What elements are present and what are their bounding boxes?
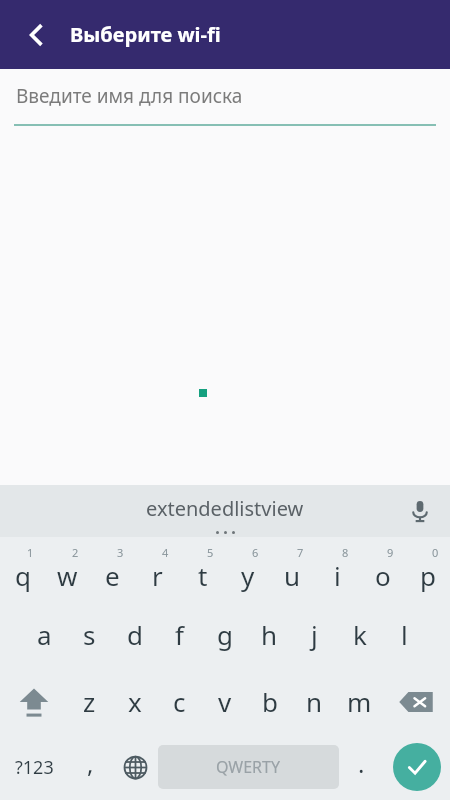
button[interactable]: Change language	[112, 735, 158, 799]
staticText: .	[358, 747, 365, 780]
button[interactable]: extendedlistview	[146, 495, 304, 522]
staticText: Выберите wi-fi	[70, 21, 221, 48]
staticText: s	[83, 617, 96, 652]
staticText: x	[128, 684, 142, 719]
staticText: h	[261, 617, 278, 652]
staticText: j	[311, 617, 318, 652]
staticText: z	[83, 684, 96, 719]
button[interactable]: 5	[180, 539, 225, 601]
staticText: o	[375, 558, 391, 593]
staticText: d	[127, 617, 143, 652]
staticText: w	[57, 558, 78, 593]
staticText: 4	[162, 545, 169, 560]
staticText: g	[217, 617, 233, 652]
staticText: 2	[72, 545, 79, 560]
button[interactable]: 1	[0, 539, 45, 601]
button[interactable]: b	[247, 668, 292, 735]
staticText: t	[198, 558, 208, 593]
button[interactable]: x	[112, 668, 157, 735]
button[interactable]: z	[67, 668, 112, 735]
button[interactable]: 7	[270, 539, 315, 601]
button[interactable]: f	[157, 601, 202, 668]
staticText: q	[15, 558, 31, 593]
staticText: n	[306, 684, 323, 719]
button[interactable]: h	[247, 601, 292, 668]
staticText: ,	[87, 747, 94, 780]
staticText: 7	[297, 545, 304, 560]
button[interactable]: Voice input	[398, 489, 442, 533]
staticText: f	[175, 617, 184, 652]
staticText: y	[241, 558, 255, 593]
staticText: ?123	[15, 755, 54, 780]
button[interactable]: 8	[315, 539, 360, 601]
button[interactable]: .	[339, 735, 383, 799]
staticText: a	[37, 617, 52, 652]
staticText: v	[218, 684, 232, 719]
button[interactable]: s	[67, 601, 112, 668]
staticText: r	[152, 558, 163, 593]
button[interactable]: k	[337, 601, 382, 668]
staticText: l	[401, 617, 408, 652]
staticText: 3	[117, 545, 124, 560]
button[interactable]: d	[112, 601, 157, 668]
staticText: p	[420, 558, 436, 593]
button[interactable]: l	[382, 601, 427, 668]
button[interactable]: 0	[405, 539, 450, 601]
button[interactable]: 9	[360, 539, 405, 601]
staticText: 9	[387, 545, 394, 560]
button[interactable]: Backspace	[382, 668, 450, 735]
button[interactable]: c	[157, 668, 202, 735]
button[interactable]: ,	[68, 735, 112, 799]
staticText: 6	[252, 545, 259, 560]
button[interactable]: 3	[90, 539, 135, 601]
button[interactable]: QWERTY	[158, 745, 339, 789]
staticText: u	[284, 558, 301, 593]
button[interactable]: a	[22, 601, 67, 668]
button[interactable]: j	[292, 601, 337, 668]
staticText: m	[347, 684, 372, 719]
button[interactable]: g	[202, 601, 247, 668]
button[interactable]: Back	[10, 9, 62, 61]
staticText: i	[334, 558, 341, 593]
staticText: Введите имя для поиска	[16, 83, 243, 109]
button[interactable]: ?123	[0, 735, 68, 799]
staticText: k	[353, 617, 367, 652]
staticText: c	[173, 684, 186, 719]
staticText: 5	[207, 545, 214, 560]
staticText: 8	[342, 545, 349, 560]
button[interactable]: m	[337, 668, 382, 735]
staticText: 1	[27, 545, 34, 560]
staticText: b	[262, 684, 278, 719]
button[interactable]: Done	[393, 743, 441, 791]
staticText: e	[105, 558, 120, 593]
button[interactable]: 2	[45, 539, 90, 601]
staticText: 0	[432, 545, 439, 560]
button[interactable]: 4	[135, 539, 180, 601]
button[interactable]: Shift	[0, 668, 67, 735]
staticText: QWERTY	[216, 756, 281, 778]
button[interactable]: n	[292, 668, 337, 735]
button[interactable]: v	[202, 668, 247, 735]
button[interactable]: 6	[225, 539, 270, 601]
